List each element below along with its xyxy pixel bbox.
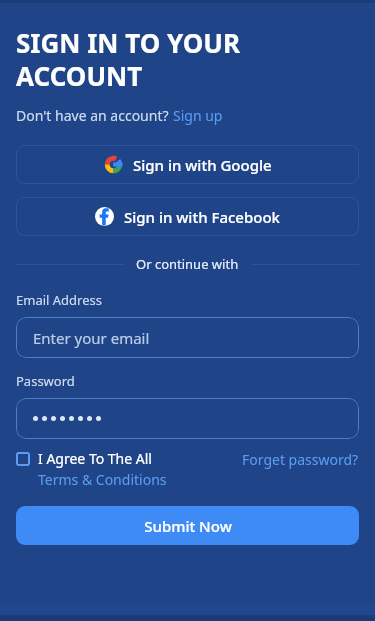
button[interactable]: I Agree To The All [16, 449, 152, 468]
staticText: SIGN IN TO YOUR ACCOUNT [16, 25, 241, 94]
button[interactable]: Sign in with Facebook [16, 197, 359, 236]
staticText: Forget password? [242, 450, 359, 469]
button[interactable] [16, 398, 359, 439]
staticText: Terms & Conditions [38, 470, 167, 489]
button[interactable]: Terms & Conditions [38, 470, 167, 489]
staticText: Enter your email [33, 328, 150, 348]
button[interactable]: Sign up [173, 106, 223, 125]
button[interactable]: Enter your email [16, 317, 359, 358]
staticText: Don't have an account? [16, 106, 173, 125]
staticText: I Agree To The All [38, 449, 152, 468]
staticText: Or continue with [136, 255, 239, 273]
staticText: Sign up [173, 106, 223, 125]
button[interactable]: Forget password? [242, 449, 359, 469]
staticText: Sign in with Google [133, 155, 272, 175]
button[interactable]: Submit Now [16, 506, 359, 545]
staticText: Submit Now [144, 516, 232, 536]
staticText: Email Address [16, 291, 102, 309]
staticText: Sign in with Facebook [124, 207, 280, 227]
staticText: Password [16, 372, 75, 390]
button[interactable]: Sign in with Google [16, 145, 359, 184]
